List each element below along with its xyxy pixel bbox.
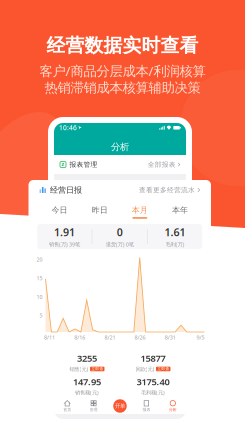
staticText: 销售额(元) bbox=[75, 389, 99, 396]
button[interactable]: 3175.40 bbox=[120, 375, 186, 396]
staticText: 分析 bbox=[111, 141, 129, 153]
button[interactable]: 本年 bbox=[160, 200, 200, 224]
staticText: 8/26 bbox=[135, 334, 146, 341]
staticText: 全部报表 bbox=[148, 160, 176, 169]
staticText: 查看更多经营流水 bbox=[139, 186, 195, 194]
button[interactable]: 147.95 bbox=[54, 375, 120, 396]
staticText: 5 bbox=[39, 312, 42, 319]
staticText: 8/21 bbox=[104, 334, 115, 341]
button[interactable]: 3255 bbox=[54, 352, 120, 372]
staticText: 9/5 bbox=[196, 334, 204, 341]
staticText: 147.95 bbox=[73, 375, 101, 388]
staticText: 毛利(万) bbox=[166, 241, 185, 248]
staticText: 本年 bbox=[172, 205, 188, 215]
staticText: 0 bbox=[117, 225, 123, 239]
staticText: 3255 bbox=[77, 352, 97, 364]
staticText: 经营数据实时查看 bbox=[46, 34, 198, 57]
staticText: 1.61 bbox=[165, 225, 186, 239]
staticText: 15877 bbox=[140, 352, 165, 364]
button[interactable]: 昨日 bbox=[80, 200, 120, 224]
button[interactable]: 报表管理 bbox=[54, 155, 186, 174]
staticText: 热销滞销成本核算辅助决策 bbox=[44, 80, 200, 96]
button[interactable]: 今日 bbox=[39, 200, 80, 224]
staticText: 报表 bbox=[142, 407, 150, 412]
button[interactable]: 开单 bbox=[107, 398, 133, 414]
button[interactable]: 15877 bbox=[120, 352, 186, 372]
staticText: 3175.40 bbox=[136, 375, 169, 388]
button[interactable]: 经营日报 bbox=[28, 180, 211, 200]
staticText: 立即查 bbox=[157, 366, 169, 371]
staticText: 本月 bbox=[132, 205, 148, 215]
staticText: 报表管理 bbox=[69, 160, 97, 169]
staticText: 8/31 bbox=[165, 334, 176, 341]
staticText: 立即查 bbox=[91, 366, 103, 371]
staticText: 10 bbox=[36, 293, 42, 300]
staticText: 回款(元) bbox=[136, 365, 155, 372]
staticText: 今日 bbox=[52, 205, 68, 215]
staticText: 销售(万) 39笔 bbox=[49, 241, 80, 248]
staticText: 分析 bbox=[169, 407, 177, 412]
staticText: 毛利额(元) bbox=[141, 389, 165, 396]
staticText: 8/16 bbox=[74, 334, 85, 341]
staticText: 8/11 bbox=[44, 334, 55, 341]
staticText: 10:46 bbox=[59, 123, 77, 132]
button[interactable]: 本月 bbox=[120, 200, 160, 224]
staticText: 昨日 bbox=[92, 205, 108, 215]
staticText: 退货(万) 0笔 bbox=[106, 241, 134, 248]
staticText: 20 bbox=[36, 256, 42, 263]
staticText: 首页 bbox=[63, 407, 71, 412]
staticText: 15 bbox=[36, 275, 42, 282]
staticText: 客户/商品分层成本/利润核算 bbox=[39, 62, 205, 80]
button[interactable]: 报表 bbox=[133, 398, 160, 414]
button[interactable]: 首页 bbox=[54, 398, 80, 414]
staticText: 管理 bbox=[90, 407, 98, 412]
button[interactable]: 分析 bbox=[160, 398, 186, 414]
staticText: 开单 bbox=[115, 403, 125, 409]
staticText: 销售(元) bbox=[69, 365, 88, 372]
staticText: 经营日报 bbox=[50, 185, 82, 195]
button[interactable]: 管理 bbox=[80, 398, 107, 414]
staticText: 1.91 bbox=[54, 225, 75, 239]
